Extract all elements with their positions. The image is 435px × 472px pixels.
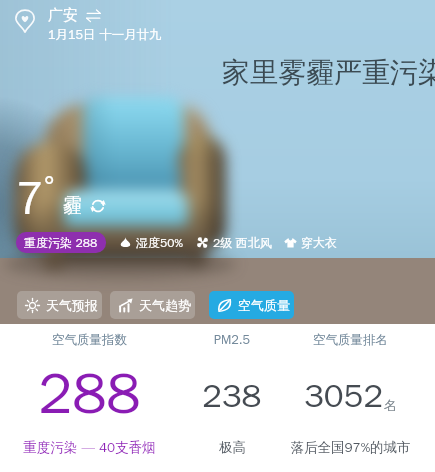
staticText: 288 <box>38 358 141 430</box>
staticText: 238 <box>202 375 262 417</box>
staticText: 广安 <box>48 6 78 25</box>
staticText: 名 <box>384 397 397 413</box>
button[interactable]: 天气预报 <box>17 291 102 319</box>
button[interactable]: 天气趋势 <box>110 291 195 319</box>
staticText: 3052 <box>304 375 384 417</box>
staticText: 重度污染 288 <box>24 235 98 250</box>
staticText: 极高 <box>219 439 246 456</box>
staticText: 湿度50% <box>136 235 183 250</box>
staticText: 落后全国97%的城市 <box>290 439 411 456</box>
staticText: 2级 西北风 <box>213 235 272 250</box>
staticText: PM2.5 <box>214 332 250 348</box>
button[interactable]: 重度污染 288 <box>16 232 106 253</box>
staticText: 重度污染 — 40支香烟 <box>23 439 156 456</box>
button[interactable]: Switch city <box>86 8 101 23</box>
staticText: 空气质量指数 <box>52 332 127 348</box>
staticText: 空气质量排名 <box>313 332 388 348</box>
button[interactable]: 空气质量 <box>209 291 294 319</box>
staticText: 霾 <box>63 194 82 218</box>
staticText: 天气预报 <box>46 297 98 313</box>
button[interactable]: Refresh <box>90 198 106 214</box>
button[interactable]: Location <box>10 6 40 36</box>
staticText: 家里雾霾严重污染 <box>222 55 435 90</box>
staticText: 天气趋势 <box>139 297 191 313</box>
staticText: 1月15日 十一月廿九 <box>48 27 162 43</box>
staticText: ° <box>44 170 55 203</box>
staticText: 空气质量 <box>238 297 290 313</box>
staticText: 7 <box>16 170 44 228</box>
staticText: 穿大衣 <box>301 235 337 250</box>
